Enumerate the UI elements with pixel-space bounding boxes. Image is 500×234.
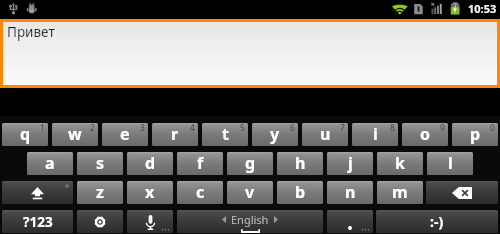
button[interactable]: Привет <box>3 22 497 85</box>
button[interactable]: j <box>327 152 373 175</box>
staticText: :-) <box>430 212 444 231</box>
staticText: 4 <box>190 123 195 134</box>
staticText: Привет <box>7 23 55 41</box>
staticText: 3 <box>140 123 145 134</box>
staticText: m <box>392 181 408 203</box>
button[interactable]: Space <box>177 210 323 233</box>
button[interactable]: y <box>252 123 298 146</box>
staticText: i <box>373 123 378 145</box>
button[interactable]: t <box>202 123 248 146</box>
staticText: e <box>120 123 130 145</box>
button[interactable]: m <box>377 181 423 204</box>
staticText: f <box>197 152 204 174</box>
staticText: z <box>96 181 104 203</box>
staticText: b <box>295 181 306 203</box>
staticText: u <box>320 123 331 145</box>
button[interactable]: ?123 <box>2 210 73 233</box>
staticText: c <box>196 181 205 203</box>
button[interactable]: k <box>377 152 423 175</box>
staticText: g <box>245 152 256 174</box>
button[interactable]: g <box>227 152 273 175</box>
button[interactable]: n <box>327 181 373 204</box>
button[interactable]: Shift <box>2 181 73 204</box>
staticText: 9 <box>440 123 445 134</box>
staticText: 1 <box>40 123 45 134</box>
staticText: v <box>245 181 255 203</box>
button[interactable]: s <box>77 152 123 175</box>
button[interactable]: w <box>52 123 98 146</box>
staticText: 0 <box>490 123 495 134</box>
button[interactable]: r <box>152 123 198 146</box>
staticText: l <box>448 152 453 174</box>
staticText: 8 <box>390 123 395 134</box>
staticText: x <box>145 181 155 203</box>
staticText: k <box>395 152 405 174</box>
button[interactable]: :-) <box>376 210 498 233</box>
staticText: o <box>420 123 431 145</box>
button[interactable]: l <box>427 152 473 175</box>
button[interactable]: Backspace <box>426 181 498 204</box>
button[interactable]: v <box>227 181 273 204</box>
button[interactable]: d <box>127 152 173 175</box>
staticText: t <box>222 123 229 145</box>
staticText: w <box>68 123 82 145</box>
button[interactable]: x <box>127 181 173 204</box>
staticText: d <box>145 152 156 174</box>
button[interactable]: e <box>102 123 148 146</box>
staticText: 7 <box>340 123 345 134</box>
button[interactable]: Period <box>327 210 373 233</box>
staticText: 2 <box>90 123 95 134</box>
staticText: ?123 <box>23 213 53 231</box>
button[interactable]: b <box>277 181 323 204</box>
staticText: y <box>270 123 280 145</box>
button[interactable]: a <box>27 152 73 175</box>
staticText: 6 <box>290 123 295 134</box>
staticText: n <box>345 181 356 203</box>
staticText: r <box>171 123 179 145</box>
button[interactable]: c <box>177 181 223 204</box>
staticText: English <box>231 212 269 227</box>
button[interactable]: p <box>452 123 498 146</box>
staticText: s <box>96 152 105 174</box>
button[interactable]: z <box>77 181 123 204</box>
button[interactable]: u <box>302 123 348 146</box>
staticText: p <box>470 123 481 145</box>
button[interactable]: Settings <box>77 210 123 233</box>
button[interactable]: f <box>177 152 223 175</box>
staticText: 10:53 <box>468 1 497 16</box>
button[interactable]: q <box>2 123 48 146</box>
staticText: q <box>20 123 31 145</box>
button[interactable]: h <box>277 152 323 175</box>
staticText: 5 <box>240 123 245 134</box>
button[interactable]: o <box>402 123 448 146</box>
staticText: j <box>348 152 353 174</box>
staticText: h <box>295 152 306 174</box>
staticText: a <box>45 152 55 174</box>
button[interactable]: Voice input <box>127 210 173 233</box>
button[interactable]: i <box>352 123 398 146</box>
